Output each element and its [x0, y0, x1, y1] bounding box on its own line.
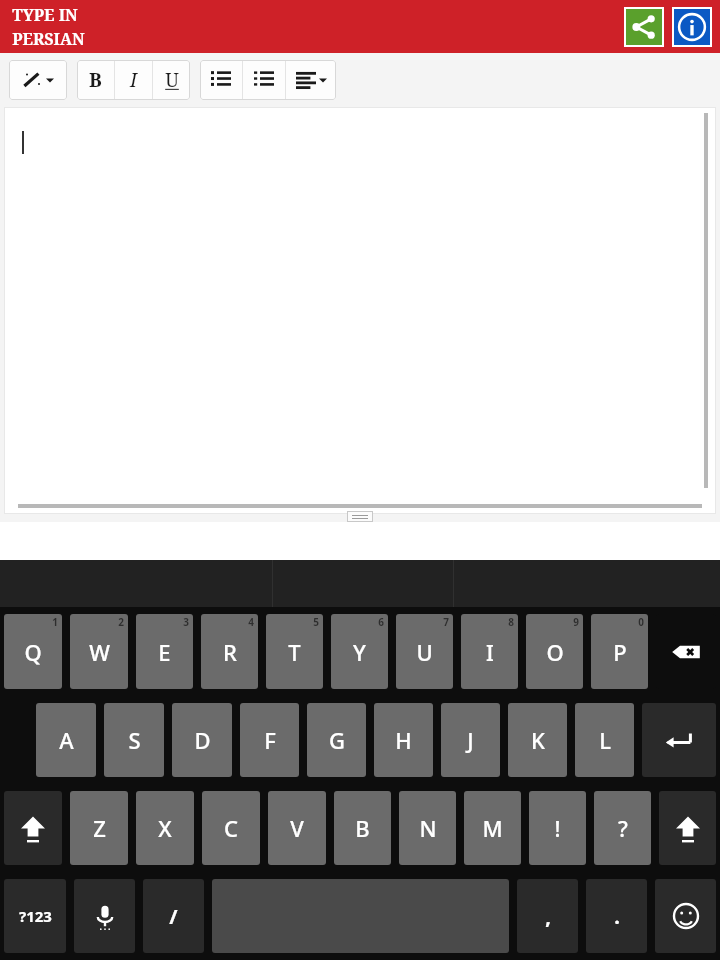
button[interactable]: L [575, 703, 634, 777]
staticText: 6 [378, 615, 384, 629]
staticText: TYPE IN [12, 4, 78, 26]
staticText: H [395, 725, 412, 755]
staticText: 9 [573, 615, 579, 629]
button[interactable]: X [136, 791, 194, 865]
button[interactable]: ! [529, 791, 586, 865]
staticText: N [419, 813, 437, 843]
staticText: M [482, 813, 503, 843]
button[interactable]: R [201, 614, 258, 689]
button[interactable]: U [396, 614, 453, 689]
staticText: 5 [313, 615, 319, 629]
button[interactable]: N [399, 791, 456, 865]
button[interactable]: V [268, 791, 326, 865]
button[interactable]: J [441, 703, 500, 777]
staticText: 2 [118, 615, 124, 629]
button[interactable]: Italic [115, 60, 152, 100]
button[interactable]: H [374, 703, 433, 777]
button[interactable]: T [266, 614, 323, 689]
staticText: I [130, 67, 137, 93]
staticText: Z [93, 813, 106, 843]
staticText: 4 [248, 615, 254, 629]
staticText: PERSIAN [12, 28, 85, 50]
staticText: ? [618, 813, 628, 843]
button[interactable]: P [591, 614, 648, 689]
button[interactable]: E [136, 614, 193, 689]
staticText: C [224, 813, 238, 843]
button[interactable]: D [172, 703, 232, 777]
staticText: L [599, 725, 611, 755]
button[interactable]: W [70, 614, 128, 689]
staticText: 1 [52, 615, 58, 629]
staticText: U [165, 67, 179, 93]
button[interactable]: Emoji [655, 879, 716, 953]
button[interactable]: Numbered list [243, 60, 285, 100]
button[interactable]: F [240, 703, 299, 777]
button[interactable]: K [508, 703, 567, 777]
button[interactable]: G [307, 703, 366, 777]
button[interactable]: Information [672, 7, 712, 47]
staticText: V [290, 813, 304, 843]
button[interactable]: Backspace [656, 614, 716, 689]
staticText: O [546, 637, 564, 667]
staticText: 7 [443, 615, 449, 629]
staticText: , [545, 903, 551, 930]
staticText: 3 [183, 615, 189, 629]
button[interactable]: C [202, 791, 260, 865]
button[interactable]: I [461, 614, 518, 689]
button[interactable]: Shift [659, 791, 716, 865]
staticText: J [467, 725, 474, 755]
button[interactable]: M [464, 791, 521, 865]
button[interactable]: , [517, 879, 578, 953]
staticText: 8 [508, 615, 514, 629]
button[interactable] [4, 107, 716, 514]
staticText: ! [554, 813, 561, 843]
staticText: U [416, 637, 433, 667]
button[interactable]: O [526, 614, 583, 689]
button[interactable]: S [104, 703, 164, 777]
button[interactable]: Style [9, 60, 67, 100]
staticText: R [223, 637, 237, 667]
button[interactable]: Voice input [74, 879, 135, 953]
button[interactable]: ?123 [4, 879, 66, 953]
staticText: Y [353, 637, 366, 667]
button[interactable]: Underline [153, 60, 190, 100]
staticText: F [264, 725, 276, 755]
button[interactable]: Y [331, 614, 388, 689]
button[interactable]: Alignment [286, 60, 336, 100]
button[interactable]: ? [594, 791, 651, 865]
staticText: ?123 [19, 906, 52, 926]
staticText: / [169, 903, 178, 930]
staticText: E [158, 637, 171, 667]
button[interactable]: Q [4, 614, 62, 689]
staticText: P [613, 637, 627, 667]
staticText: X [158, 813, 172, 843]
button[interactable]: B [334, 791, 391, 865]
staticText: A [59, 725, 74, 755]
staticText: S [128, 725, 141, 755]
staticText: T [288, 637, 301, 667]
staticText: K [531, 725, 545, 755]
staticText: B [89, 67, 102, 93]
staticText: I [486, 637, 494, 667]
staticText: D [194, 725, 211, 755]
button[interactable]: Bold [77, 60, 114, 100]
button[interactable]: Shift [4, 791, 62, 865]
staticText: . [614, 903, 620, 930]
button[interactable]: Enter [642, 703, 716, 777]
staticText: W [89, 637, 110, 667]
button[interactable]: . [586, 879, 647, 953]
staticText: 0 [638, 615, 644, 629]
button[interactable]: / [143, 879, 204, 953]
button[interactable]: Share [624, 7, 664, 47]
button[interactable]: Bulleted list [200, 60, 242, 100]
staticText: B [355, 813, 370, 843]
button[interactable]: Z [70, 791, 128, 865]
staticText: G [329, 725, 345, 755]
button[interactable]: A [36, 703, 96, 777]
staticText: Q [24, 637, 42, 667]
